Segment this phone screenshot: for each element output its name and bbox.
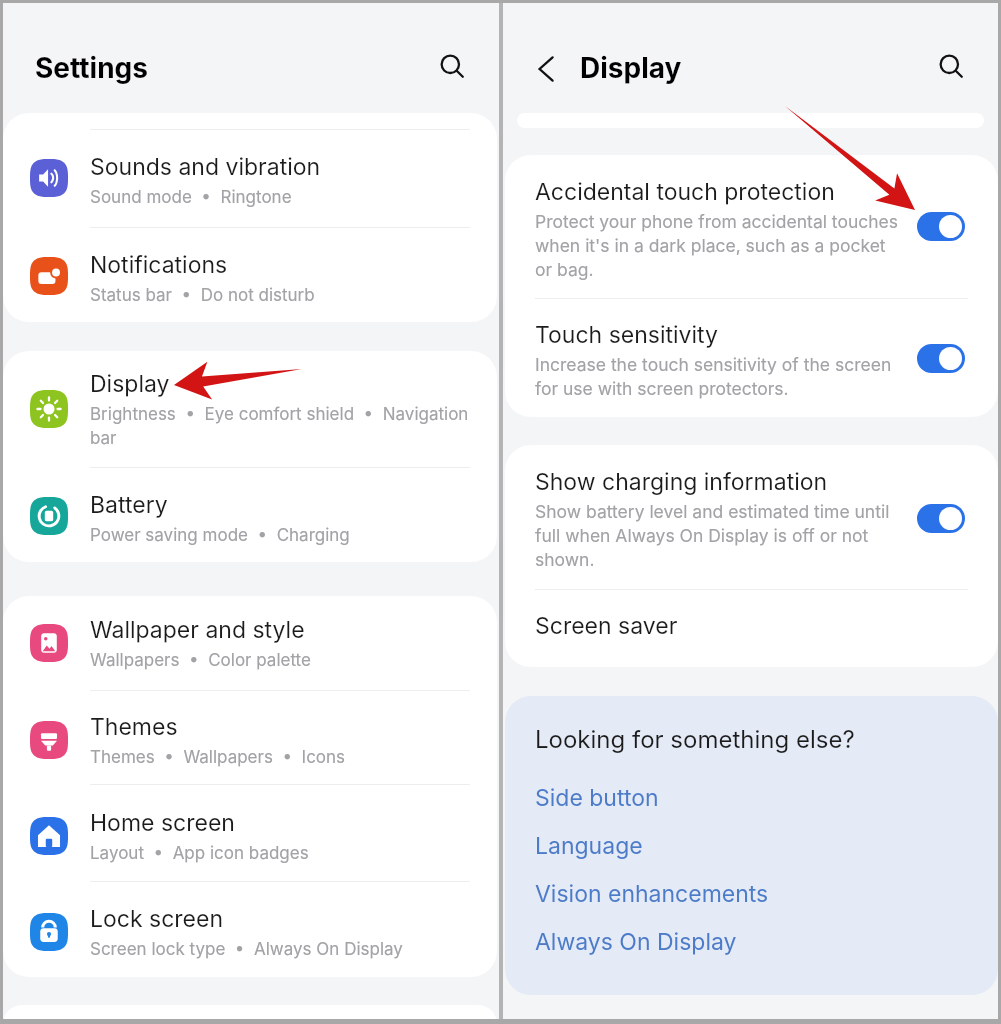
staticText: Touch sensitivity — [535, 321, 718, 349]
staticText: Themes — [90, 713, 178, 741]
staticText: Wallpaper and style — [90, 616, 305, 644]
button[interactable]: Toggle on — [917, 344, 965, 373]
staticText: Sounds and vibration — [90, 153, 321, 181]
button[interactable]: Wallpaper and style — [3, 596, 497, 691]
staticText: Themes • Wallpapers • Icons — [90, 747, 346, 768]
button[interactable]: Themes — [3, 691, 497, 785]
staticText: Settings — [35, 51, 148, 85]
staticText: Power saving mode • Charging — [90, 525, 350, 546]
staticText: Layout • App icon badges — [90, 843, 309, 864]
staticText: Vision enhancements — [535, 880, 769, 908]
staticText: Looking for something else? — [535, 725, 855, 754]
button[interactable]: Screen saver — [505, 590, 998, 667]
button[interactable]: Always On Display — [535, 918, 978, 966]
staticText: Always On Display — [535, 928, 737, 956]
button[interactable]: Side button — [535, 774, 978, 822]
staticText: Notifications — [90, 251, 228, 279]
button[interactable]: Vision enhancements — [535, 870, 978, 918]
staticText: Brightness • Eye comfort shield • Naviga… — [90, 404, 481, 448]
staticText: Display — [90, 370, 170, 398]
button[interactable]: Sounds and vibration — [3, 130, 497, 228]
button[interactable]: Lock screen — [3, 882, 497, 977]
button[interactable]: Language — [535, 822, 978, 870]
staticText: Lock screen — [90, 905, 223, 933]
staticText: Show charging information — [535, 468, 828, 496]
button[interactable]: Search — [429, 43, 475, 89]
button[interactable]: Notifications — [3, 228, 497, 322]
staticText: Sound mode • Ringtone — [90, 187, 292, 208]
staticText: Home screen — [90, 809, 235, 837]
button[interactable]: Touch sensitivity — [505, 299, 998, 417]
button[interactable]: Display — [3, 351, 497, 468]
staticText: Language — [535, 832, 643, 860]
button[interactable]: Toggle on — [917, 212, 965, 241]
staticText: Accidental touch protection — [535, 178, 835, 206]
staticText: Display — [580, 51, 682, 85]
staticText: Wallpapers • Color palette — [90, 650, 311, 671]
staticText: Screen saver — [535, 612, 678, 640]
staticText: Protect your phone from accidental touch… — [535, 211, 903, 280]
staticText: Increase the touch sensitivity of the sc… — [535, 354, 903, 399]
button[interactable]: Search — [928, 43, 974, 89]
button[interactable]: Battery — [3, 468, 497, 562]
staticText: Screen lock type • Always On Display — [90, 939, 403, 960]
button[interactable]: Accidental touch protection — [505, 155, 998, 299]
button[interactable]: Home screen — [3, 785, 497, 882]
button[interactable]: Show charging information — [505, 445, 998, 590]
staticText: Status bar • Do not disturb — [90, 285, 315, 306]
staticText: Side button — [535, 784, 659, 812]
button[interactable]: Back — [525, 47, 569, 91]
button[interactable]: Toggle on — [917, 504, 965, 533]
staticText: Battery — [90, 491, 168, 519]
staticText: Show battery level and estimated time un… — [535, 501, 903, 570]
